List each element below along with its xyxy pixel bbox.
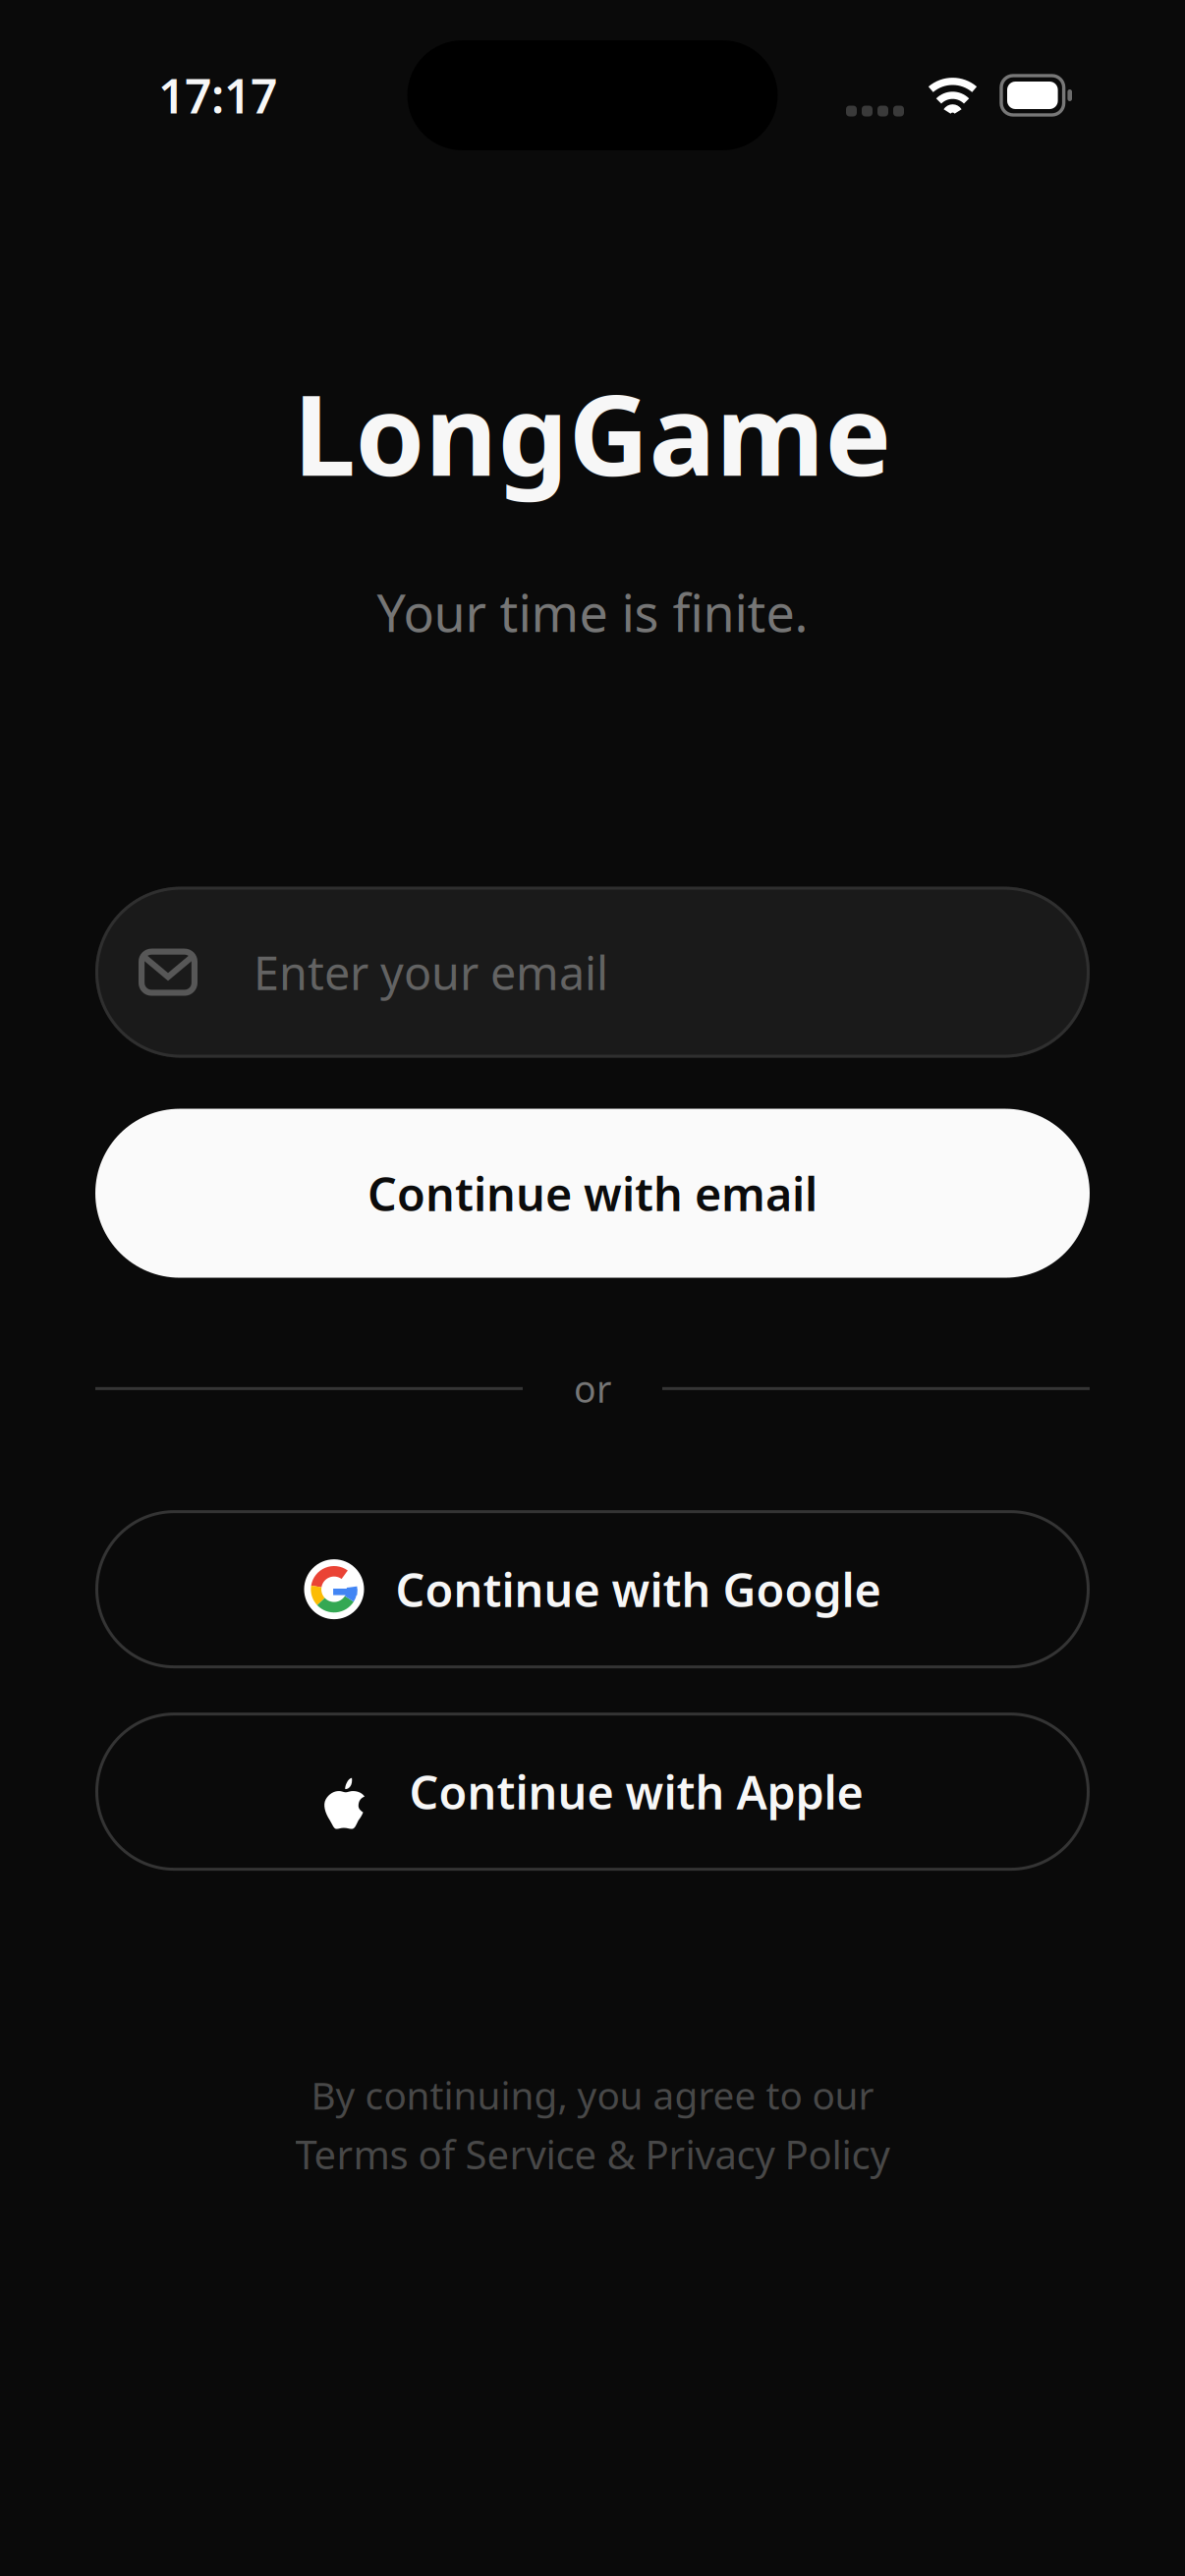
button[interactable]: Continue with Apple <box>95 1713 1090 1871</box>
staticText: By continuing, you agree to our <box>311 2070 874 2120</box>
button[interactable]: Continue with email <box>95 1109 1090 1278</box>
staticText: Continue with Apple <box>409 1761 863 1822</box>
staticText: LongGame <box>293 359 892 506</box>
staticText: Your time is finite. <box>377 578 808 646</box>
button[interactable]: Terms of Service & Privacy Policy <box>295 2128 890 2180</box>
staticText: Enter your email <box>254 942 608 1003</box>
staticText: Continue with Google <box>395 1559 881 1620</box>
staticText: 17:17 <box>158 64 277 127</box>
staticText: Continue with email <box>367 1163 818 1224</box>
button[interactable]: Continue with Google <box>95 1510 1090 1668</box>
staticText: or <box>574 1364 611 1413</box>
button[interactable]: Enter your email <box>95 887 1090 1058</box>
staticText: Terms of Service & Privacy Policy <box>295 2128 890 2180</box>
